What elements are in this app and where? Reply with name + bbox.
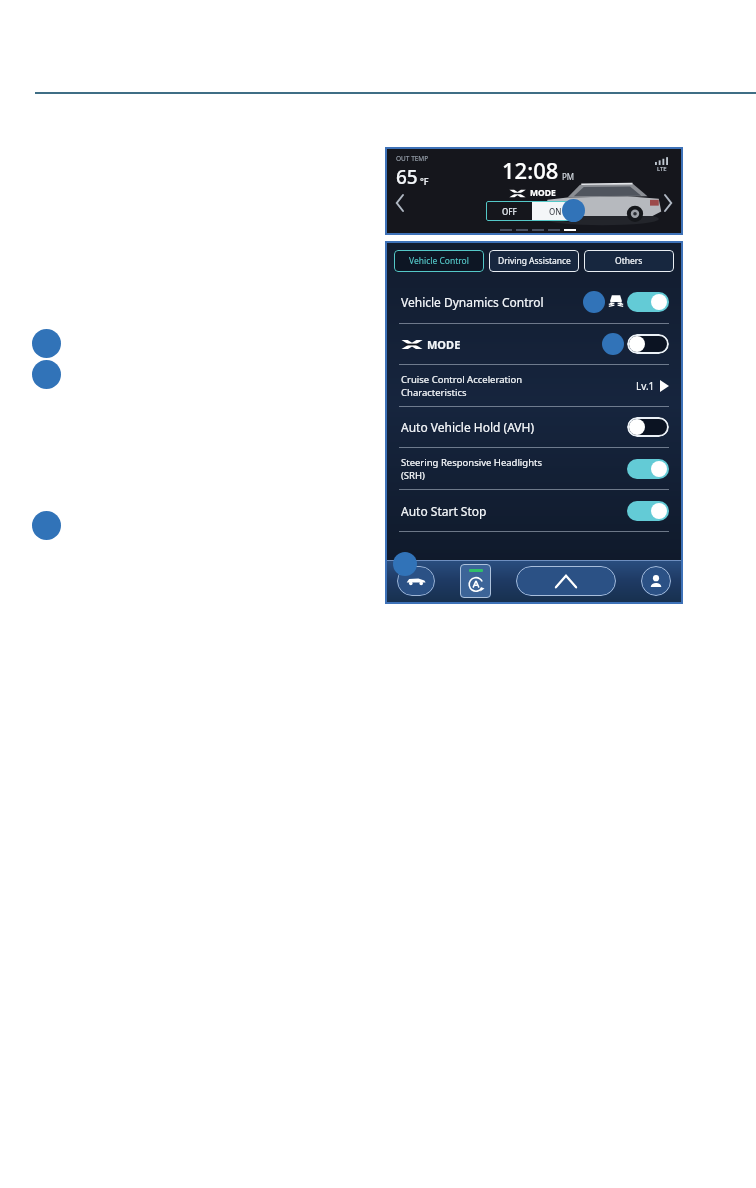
button[interactable]: Vehicle (397, 566, 435, 596)
staticText: Others (615, 255, 643, 267)
staticText: LTE (657, 165, 667, 173)
button[interactable]: MODE (387, 324, 681, 364)
staticText: Lv.1 (636, 379, 655, 393)
staticText: Characteristics (401, 386, 467, 399)
button[interactable]: Steering Responsive Headlights (387, 448, 681, 489)
button[interactable]: Previous (391, 194, 409, 212)
button[interactable]: Vehicle Control (394, 250, 484, 272)
staticText: Auto Start Stop (401, 503, 487, 519)
staticText: OUT TEMP (396, 154, 429, 163)
button[interactable]: Auto Start Stop (460, 564, 491, 598)
staticText: Auto Vehicle Hold (AVH) (401, 419, 535, 435)
staticText: Vehicle Control (409, 255, 469, 267)
staticText: Cruise Control Acceleration (401, 373, 523, 386)
staticText: °F (420, 175, 429, 187)
button[interactable]: Profile (641, 566, 671, 596)
button[interactable]: Others (584, 250, 674, 272)
button[interactable]: Home (516, 566, 616, 596)
staticText: MODE (530, 187, 556, 199)
staticText: ON (549, 206, 562, 217)
button[interactable]: Toggle off (627, 334, 669, 354)
button[interactable]: Vehicle Dynamics Control (387, 281, 681, 323)
staticText: Steering Responsive Headlights (401, 456, 543, 469)
staticText: 65 (396, 164, 418, 190)
button[interactable]: Cruise Control Acceleration (387, 365, 681, 406)
staticText: MODE (427, 337, 461, 352)
button[interactable]: Toggle off (627, 417, 669, 437)
button[interactable]: OFF (486, 201, 579, 221)
button[interactable]: Toggle on (627, 292, 669, 312)
button[interactable]: Driving Assistance (489, 250, 579, 272)
button[interactable]: Next (659, 194, 677, 212)
button[interactable]: Toggle on (627, 501, 669, 521)
button[interactable]: Toggle on (627, 459, 669, 479)
button[interactable]: Auto Start Stop (387, 490, 681, 531)
staticText: PM (562, 171, 575, 182)
staticText: Vehicle Dynamics Control (401, 294, 544, 310)
staticText: Driving Assistance (498, 255, 571, 267)
button[interactable]: Auto Vehicle Hold (AVH) (387, 407, 681, 447)
staticText: OFF (502, 206, 517, 217)
staticText: 12:08 (502, 155, 559, 185)
staticText: (SRH) (401, 469, 425, 482)
